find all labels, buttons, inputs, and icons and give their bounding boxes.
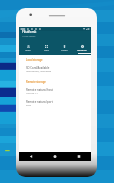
staticText: Remote natural host xyxy=(26,88,53,92)
staticText: Remote natural port xyxy=(26,100,53,104)
button[interactable]: SD Card/Available xyxy=(19,66,91,77)
staticText: 1.9.300 release xyxy=(22,35,36,38)
staticText: 2222 xyxy=(26,104,32,107)
staticText: SETTINGS xyxy=(77,49,87,52)
staticText: APPS xyxy=(44,49,49,52)
staticText: /mnt/sdcard, /mnt/extsd xyxy=(26,70,52,73)
staticText: FILES xyxy=(25,49,31,52)
staticText: Remote storage xyxy=(26,80,46,84)
button[interactable]: APPS xyxy=(37,44,55,52)
button[interactable]: Recents xyxy=(67,152,91,161)
button[interactable]: Back xyxy=(19,152,43,161)
button[interactable]: TOOLS xyxy=(55,44,73,52)
button[interactable]: SETTINGS xyxy=(73,44,91,52)
button[interactable]: Remote natural port xyxy=(19,100,91,111)
button[interactable]: FILES xyxy=(19,44,37,52)
staticText: 192.168.1.1 xyxy=(26,92,38,95)
staticText: Local storage xyxy=(26,58,43,62)
staticText: Filutforsk xyxy=(22,30,37,34)
button[interactable]: Home xyxy=(43,152,67,161)
staticText: SD Card/Available xyxy=(26,66,50,70)
staticText: TOOLS xyxy=(61,49,68,52)
button[interactable]: Remote natural host xyxy=(19,88,91,99)
